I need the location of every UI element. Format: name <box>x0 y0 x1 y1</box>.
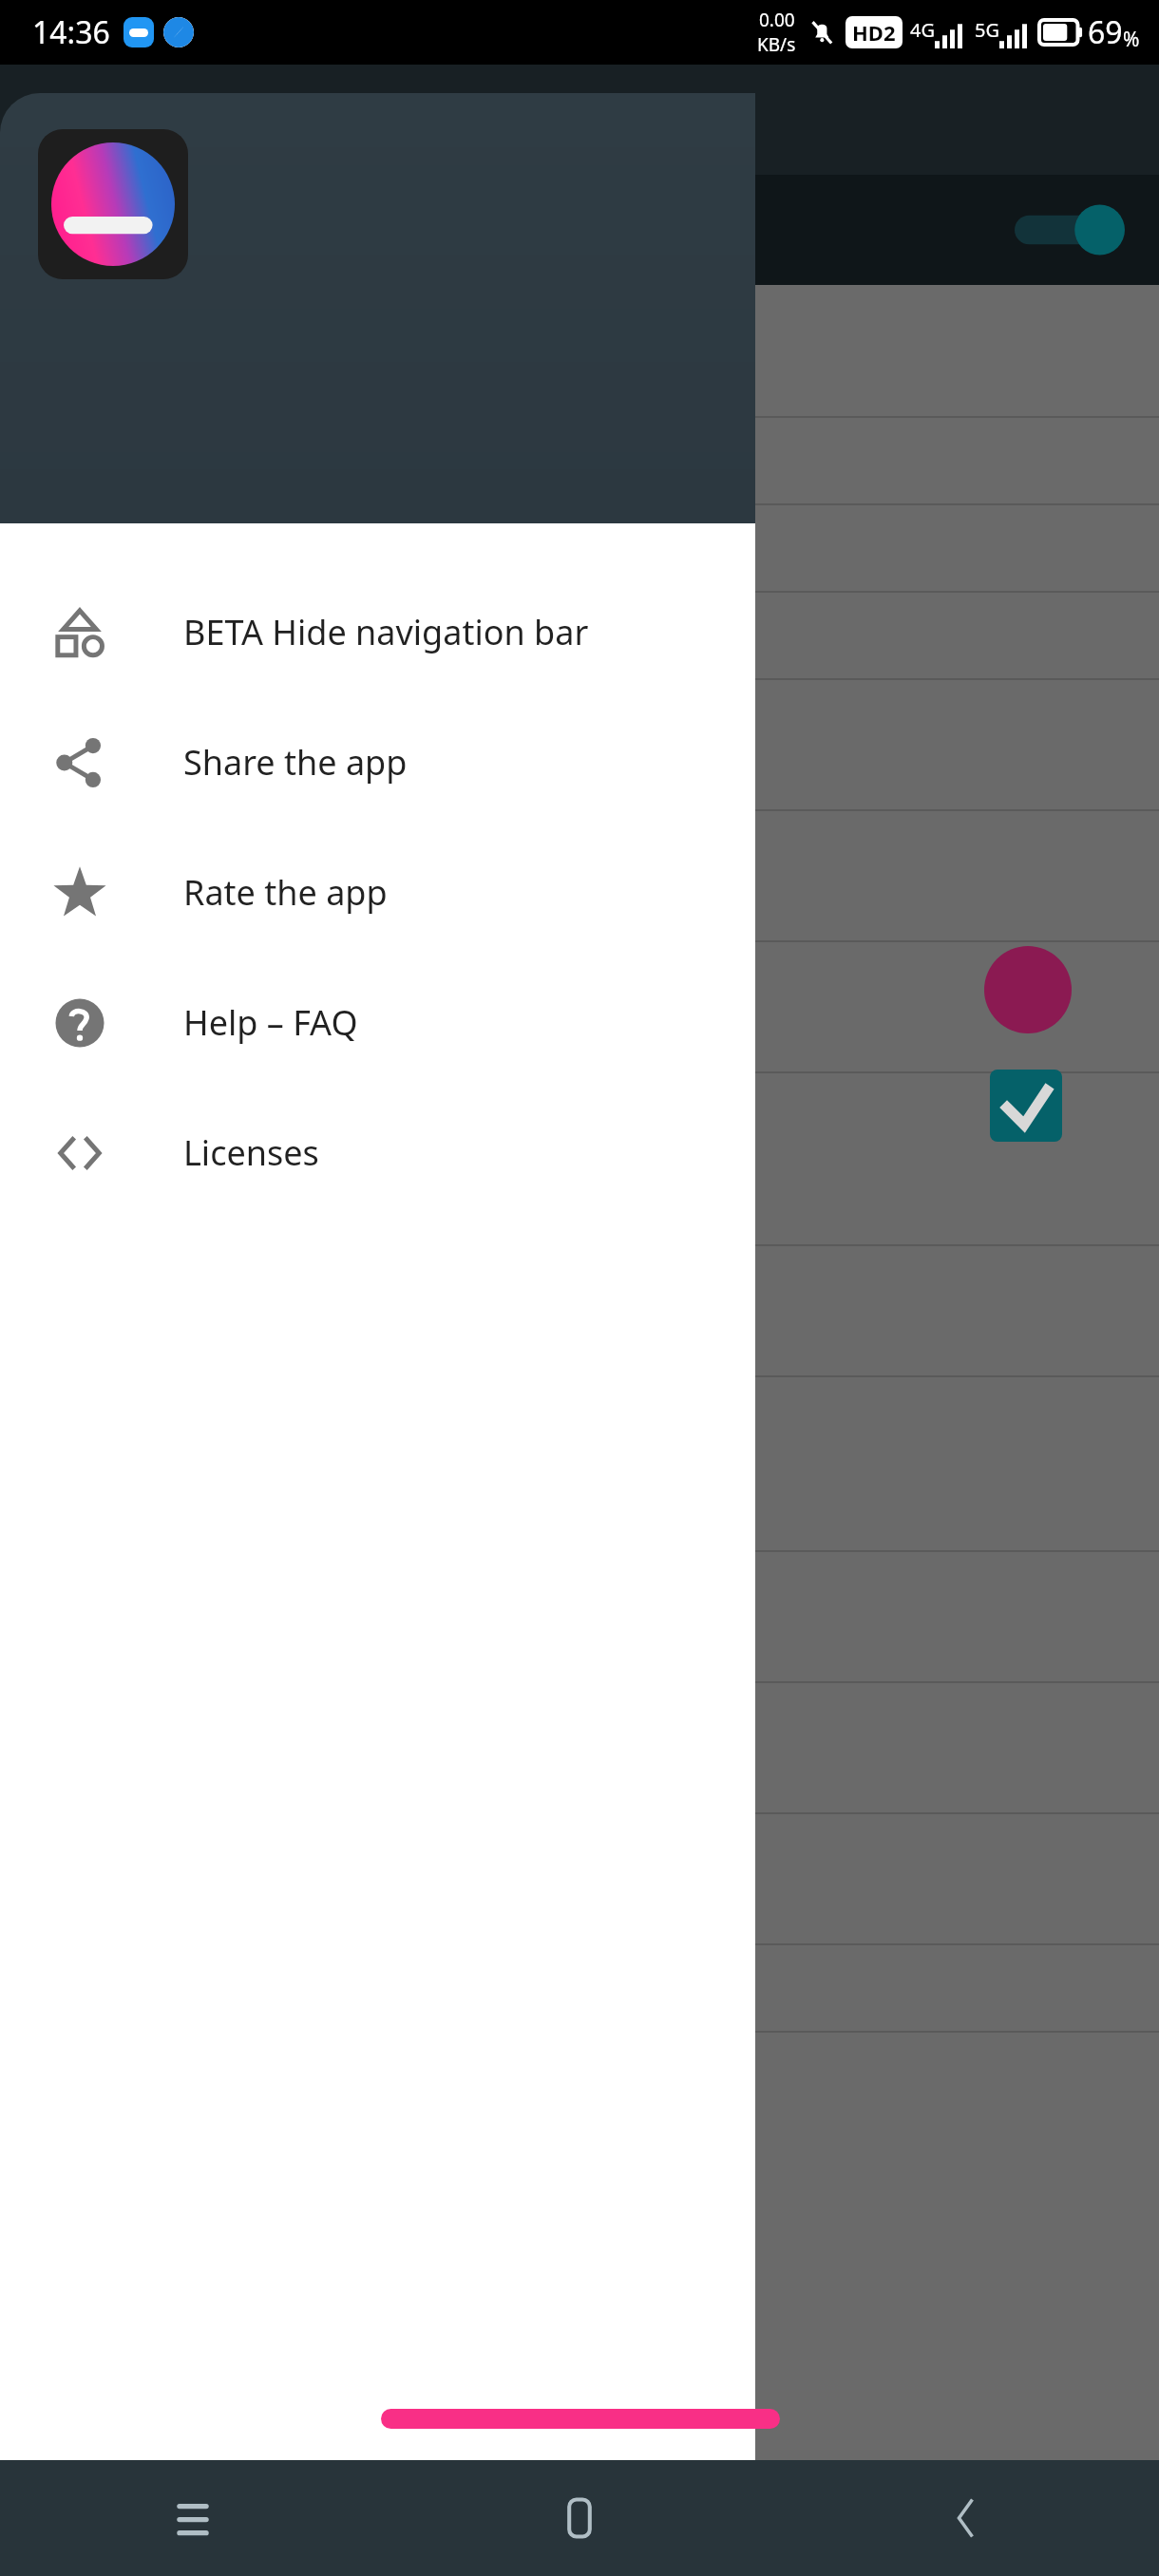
button[interactable]: Action <box>381 2409 780 2429</box>
staticText: 14:36 <box>32 11 110 53</box>
button[interactable]: Rate the app <box>0 827 755 957</box>
button[interactable]: Recents <box>0 2460 386 2576</box>
staticText: Rate the app <box>183 869 388 916</box>
staticText: HD2 <box>852 18 896 47</box>
staticText: Help – FAQ <box>183 999 358 1046</box>
staticText: Version 1.7.0 <box>540 2504 729 2547</box>
staticText: Licenses <box>183 1129 319 1176</box>
button[interactable]: Privacy policy <box>28 2504 227 2547</box>
button[interactable]: Share the app <box>0 697 755 827</box>
staticText: KB/s <box>757 32 796 57</box>
staticText: 0.00 <box>759 8 795 32</box>
button[interactable]: Back <box>772 2460 1159 2576</box>
button[interactable]: Help – FAQ <box>0 957 755 1088</box>
staticText: 69 <box>1088 11 1123 53</box>
button[interactable]: BETA Hide navigation bar <box>0 567 755 697</box>
staticText: 4G <box>910 17 935 43</box>
staticText: Share the app <box>183 739 408 786</box>
staticText: % <box>1123 26 1140 53</box>
button[interactable]: Toggle <box>1015 207 1121 253</box>
button[interactable]: Licenses <box>0 1088 755 1218</box>
staticText: BETA Hide navigation bar <box>183 609 589 655</box>
button[interactable]: Home <box>386 2460 772 2576</box>
staticText: 5G <box>975 17 999 43</box>
